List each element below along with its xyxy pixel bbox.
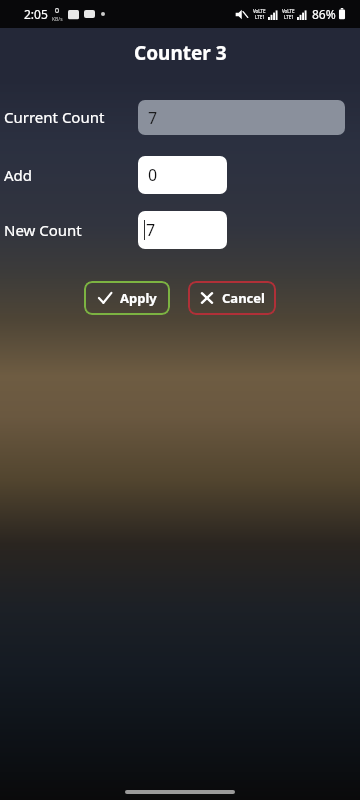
staticText: 0 <box>55 6 60 16</box>
button[interactable]: Apply <box>84 281 170 315</box>
staticText: 7 <box>148 107 158 129</box>
staticText: New Count <box>4 220 82 240</box>
staticText: 2:05 <box>24 6 48 22</box>
staticText: Current Count <box>4 107 105 127</box>
staticText: VoLTE <box>253 8 266 14</box>
staticText: 7 <box>146 219 156 241</box>
button[interactable]: 7 <box>138 100 345 135</box>
button[interactable]: Cancel <box>188 281 276 315</box>
staticText: Apply <box>120 289 157 307</box>
staticText: VoLTE <box>282 8 295 14</box>
staticText: KB/s <box>52 16 63 23</box>
staticText: LTE1 <box>255 14 265 20</box>
staticText: LTE1 <box>284 14 294 20</box>
staticText: 86% <box>312 6 336 22</box>
staticText: Counter 3 <box>134 40 227 66</box>
staticText: Add <box>4 165 33 185</box>
staticText: 0 <box>148 164 158 186</box>
button[interactable]: 0 <box>138 156 227 194</box>
staticText: Cancel <box>222 289 265 307</box>
button[interactable]: 7 <box>138 211 227 249</box>
